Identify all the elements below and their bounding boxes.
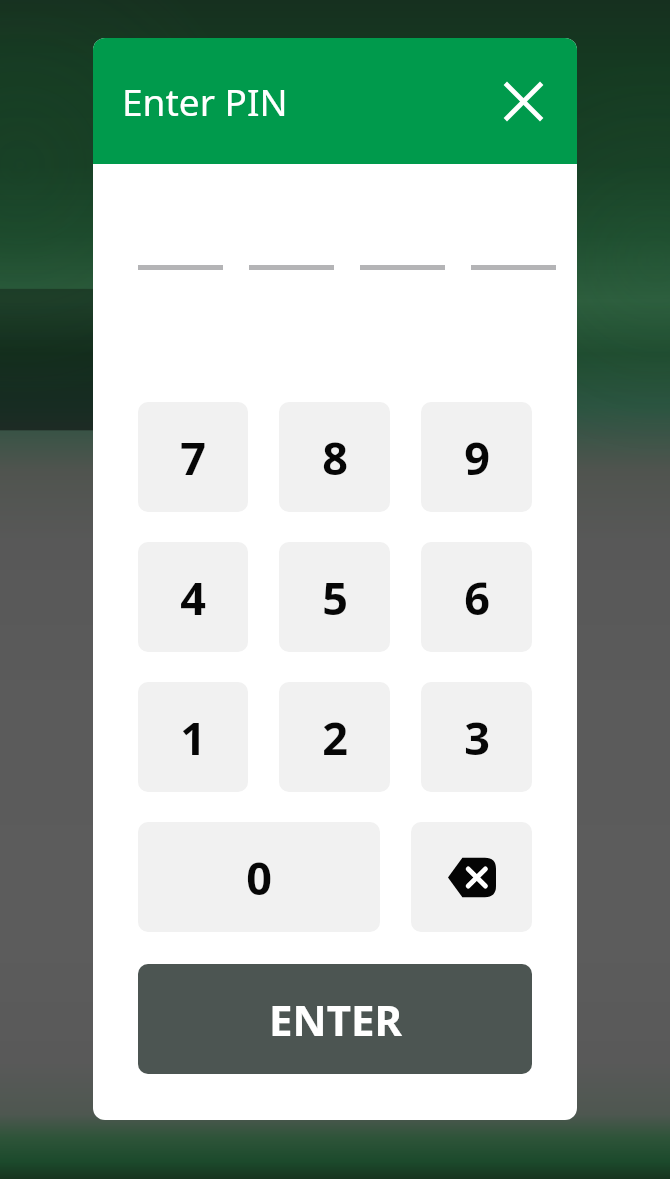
staticText: 3 — [464, 707, 490, 768]
button[interactable]: 4 — [138, 542, 248, 652]
button[interactable]: Backspace — [411, 822, 532, 932]
staticText: 2 — [322, 707, 348, 768]
button[interactable]: 1 — [138, 682, 248, 792]
staticText: 8 — [322, 427, 348, 488]
staticText: 4 — [180, 567, 206, 628]
staticText: ENTER — [269, 991, 402, 1048]
button[interactable]: 8 — [279, 402, 390, 512]
staticText: 6 — [464, 567, 490, 628]
staticText: 9 — [464, 427, 490, 488]
button[interactable]: 7 — [138, 402, 248, 512]
button[interactable]: Close — [495, 73, 551, 129]
staticText: 5 — [322, 567, 348, 628]
button[interactable]: 0 — [138, 822, 380, 932]
staticText: 7 — [180, 427, 206, 488]
button[interactable]: 2 — [279, 682, 390, 792]
button[interactable]: 5 — [279, 542, 390, 652]
button[interactable]: 3 — [421, 682, 532, 792]
staticText: 0 — [246, 847, 272, 908]
button[interactable]: 9 — [421, 402, 532, 512]
button[interactable]: 6 — [421, 542, 532, 652]
staticText: Enter PIN — [122, 76, 288, 126]
button[interactable]: ENTER — [138, 964, 532, 1074]
staticText: 1 — [180, 707, 206, 768]
